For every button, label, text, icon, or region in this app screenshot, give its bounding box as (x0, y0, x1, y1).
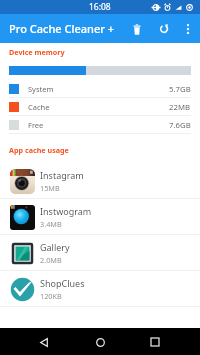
button[interactable]: ShopClues (0, 271, 200, 307)
button[interactable]: Instagram (0, 163, 200, 199)
button[interactable]: More options (175, 16, 200, 42)
button[interactable]: Instwogram (0, 199, 200, 235)
staticText: App cache usage (9, 145, 69, 155)
staticText: 7.6GB (169, 120, 191, 131)
staticText: Instwogram (40, 205, 92, 217)
staticText: ShopClues (40, 277, 85, 289)
staticText: Gallery (40, 241, 70, 253)
staticText: 15MB (40, 183, 60, 193)
button[interactable]: Refresh (151, 16, 177, 42)
button[interactable]: Back (31, 329, 57, 355)
staticText: System (28, 84, 54, 94)
button[interactable]: Home (87, 329, 113, 355)
staticText: Free (28, 120, 44, 130)
staticText: 16:08 (89, 1, 111, 13)
staticText: 120KB (40, 291, 62, 301)
staticText: Device memory (9, 47, 65, 57)
staticText: 3.4MB (40, 219, 62, 229)
button[interactable]: Recent apps (142, 329, 168, 355)
staticText: 5.7GB (169, 84, 191, 95)
staticText: Cache (28, 102, 50, 112)
button[interactable]: Delete cache (124, 16, 150, 42)
staticText: 22MB (169, 102, 191, 113)
staticText: Pro Cache Cleaner + (9, 21, 115, 36)
staticText: Instagram (40, 169, 84, 181)
button[interactable]: Gallery (0, 235, 200, 271)
staticText: 2.0MB (40, 255, 62, 265)
